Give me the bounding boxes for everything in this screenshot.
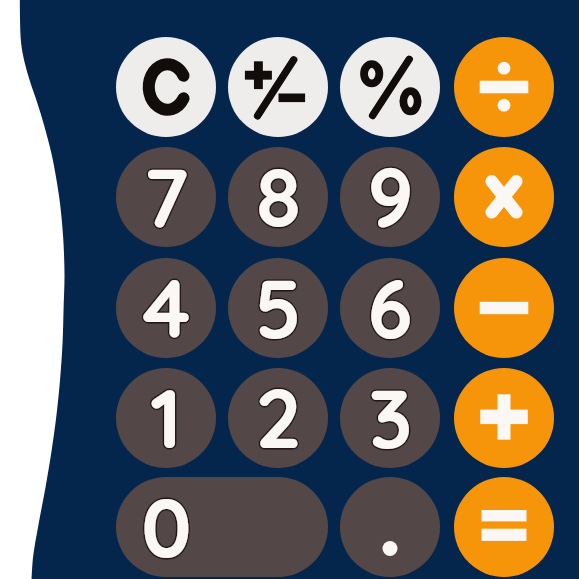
staticText: 7 [143, 147, 189, 245]
button[interactable]: Plus [454, 368, 554, 468]
button[interactable]: Percent [340, 37, 440, 137]
staticText: 3 [368, 368, 413, 466]
staticText: 8 [256, 147, 301, 245]
staticText: 2 [255, 368, 302, 466]
staticText: 4 [142, 258, 191, 356]
staticText: 0 [141, 477, 192, 575]
button[interactable]: Clear [116, 37, 216, 137]
staticText: 2 [255, 368, 302, 466]
staticText: 1 [150, 368, 182, 466]
button[interactable]: 5 [228, 258, 328, 358]
button[interactable]: 3 [340, 368, 440, 468]
staticText: 4 [142, 258, 191, 356]
button[interactable]: 9 [340, 147, 440, 247]
staticText: 6 [367, 258, 413, 356]
staticText: 5 [254, 258, 302, 356]
button[interactable]: Minus [454, 258, 554, 358]
button[interactable]: 7 [116, 147, 216, 247]
staticText: 0 [141, 477, 192, 575]
staticText: 8 [256, 147, 301, 245]
button[interactable]: Divide [454, 37, 554, 137]
button[interactable]: 2 [228, 368, 328, 468]
staticText: 9 [367, 147, 414, 245]
button[interactable]: Plus or minus [228, 37, 328, 137]
button[interactable]: 0 [116, 477, 328, 577]
button[interactable]: 4 [116, 258, 216, 358]
staticText: 3 [368, 368, 413, 466]
staticText: 9 [367, 147, 414, 245]
button[interactable]: Equals [454, 477, 554, 577]
button[interactable]: 8 [228, 147, 328, 247]
button[interactable]: 6 [340, 258, 440, 358]
button[interactable]: Multiply [454, 147, 554, 247]
button[interactable]: Decimal point [340, 477, 440, 577]
staticText: 7 [143, 147, 189, 245]
staticText: 1 [150, 368, 182, 466]
staticText: 5 [254, 258, 302, 356]
staticText: 6 [367, 258, 413, 356]
button[interactable]: 1 [116, 368, 216, 468]
